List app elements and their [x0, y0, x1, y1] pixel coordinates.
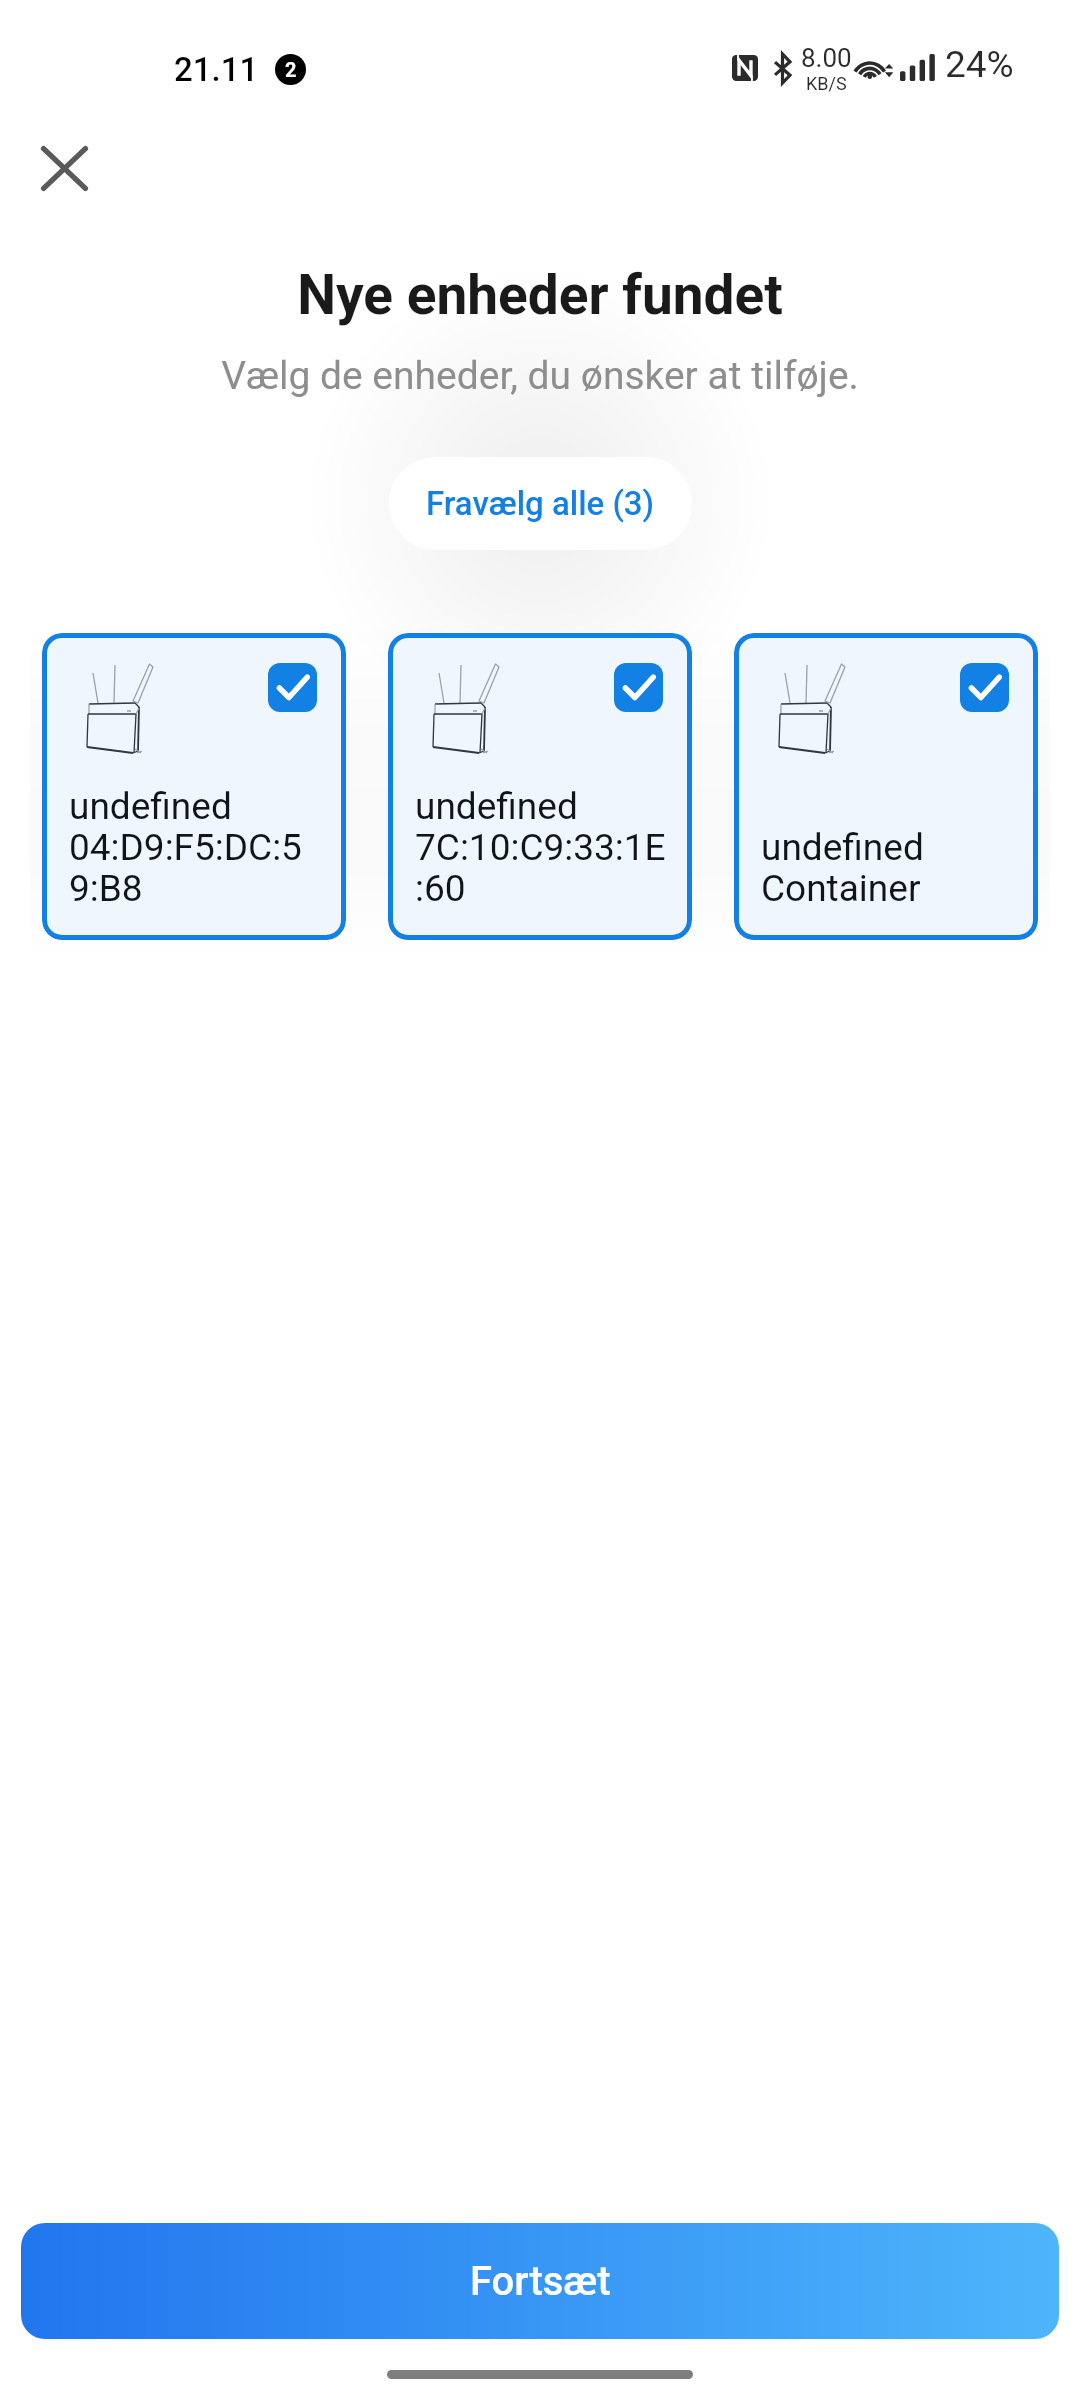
button[interactable]: Selected: [960, 663, 1009, 712]
staticText: Fortsæt: [470, 2258, 611, 2305]
staticText: 2: [285, 58, 297, 81]
button[interactable]: Selected: [268, 663, 317, 712]
staticText: undefined Container: [761, 826, 924, 910]
staticText: 21.11: [174, 50, 259, 89]
button[interactable]: Selected: [388, 633, 692, 940]
button[interactable]: Selected: [614, 663, 663, 712]
staticText: undefined 04:D9:F5:DC:59:B8: [69, 785, 322, 910]
staticText: Vælg de enheder, du ønsker at tilføje.: [221, 353, 859, 399]
button[interactable]: Fortsæt: [21, 2223, 1059, 2339]
staticText: undefined 7C:10:C9:33:1E:60: [415, 785, 668, 910]
staticText: Nye enheder fundet: [297, 263, 783, 327]
staticText: 8.00: [801, 43, 852, 73]
staticText: 24%: [945, 43, 1014, 86]
staticText: KB/S: [806, 73, 847, 94]
button[interactable]: Fravælg alle (3): [389, 457, 692, 550]
button[interactable]: Close: [19, 123, 109, 213]
button[interactable]: Selected: [42, 633, 346, 940]
staticText: Fravælg alle (3): [426, 484, 655, 523]
button[interactable]: Selected: [734, 633, 1038, 940]
